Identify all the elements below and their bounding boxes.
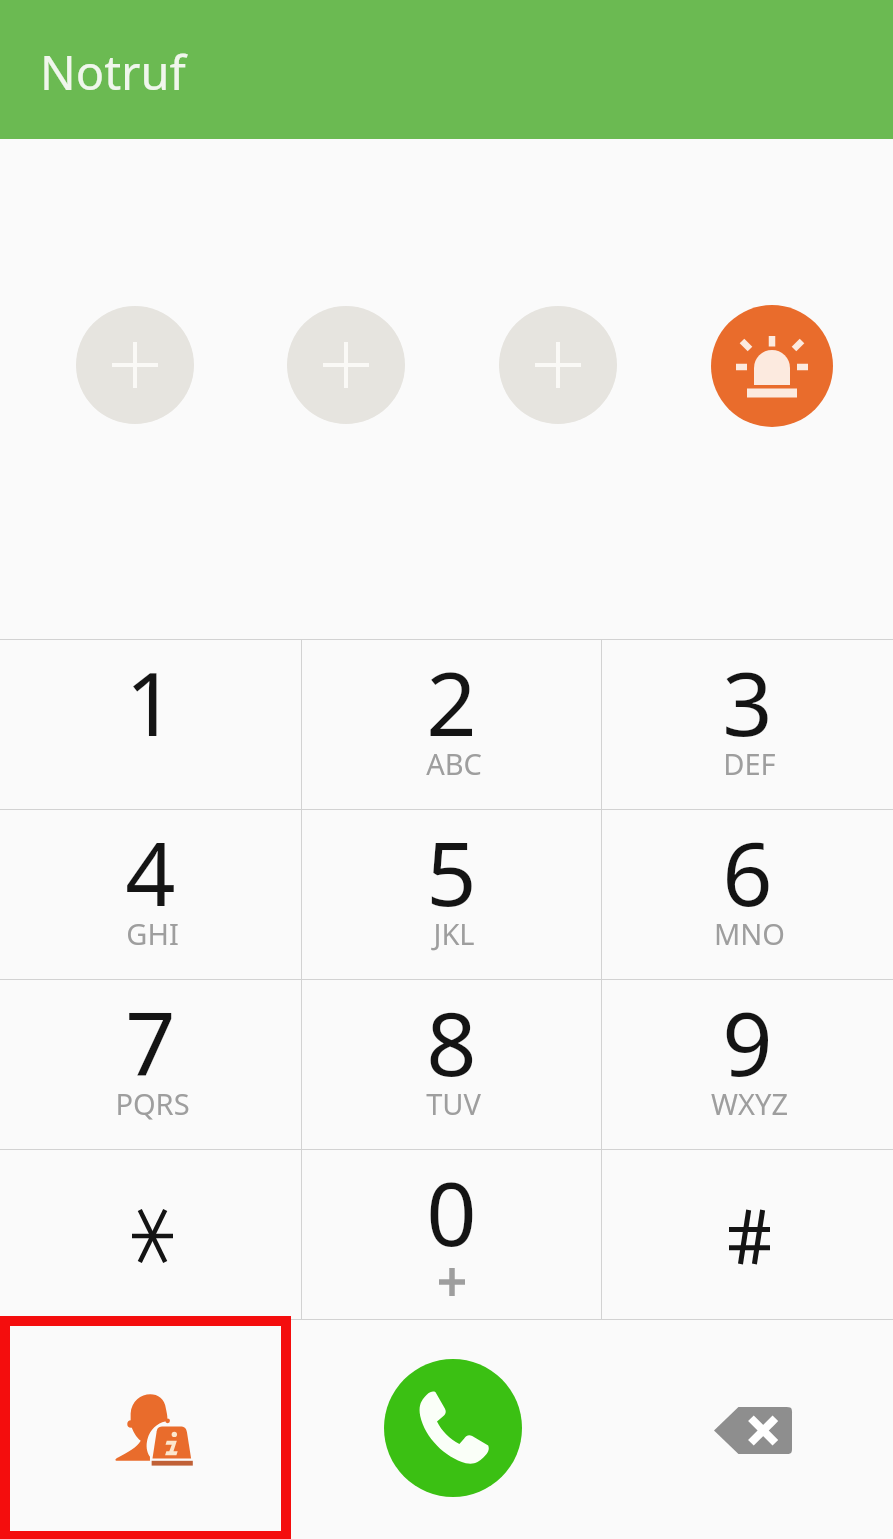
button[interactable]: 5 [302,810,601,979]
button[interactable]: Emergency siren [711,305,833,427]
button[interactable]: Call [384,1359,522,1497]
button[interactable]: 2 [302,640,601,809]
staticText: 0 [426,1152,477,1272]
staticText: TUV [426,1084,481,1123]
staticText: 8 [426,982,477,1102]
button[interactable]: Add emergency contact [76,306,194,424]
button[interactable]: Add emergency contact [499,306,617,424]
button[interactable]: 1 [0,640,301,809]
button[interactable]: Hash [602,1150,893,1319]
button[interactable]: 9 [602,980,893,1149]
staticText: GHI [126,914,179,953]
button[interactable]: 6 [602,810,893,979]
staticText: 5 [426,812,477,932]
button[interactable]: 0 [302,1150,601,1319]
button[interactable]: 3 [602,640,893,809]
button[interactable]: 4 [0,810,301,979]
button[interactable]: Star [0,1150,301,1319]
staticText: Notruf [40,40,186,104]
button[interactable]: Add emergency contact [287,306,405,424]
staticText: ABC [426,744,482,783]
staticText: PQRS [115,1084,190,1123]
staticText: 3 [722,642,773,762]
staticText: 4 [125,812,176,932]
staticText: JKL [433,914,475,953]
button[interactable]: 8 [302,980,601,1149]
staticText: 9 [722,982,773,1102]
button[interactable]: Backspace [693,1400,813,1460]
staticText: DEF [723,744,776,783]
staticText: 6 [722,812,773,932]
staticText: 1 [125,642,176,762]
button[interactable]: 7 [0,980,301,1149]
staticText: 7 [125,982,176,1102]
staticText: 2 [426,642,477,762]
staticText: MNO [714,914,785,953]
button[interactable]: Emergency information [0,1320,290,1539]
staticText: WXYZ [711,1084,788,1123]
